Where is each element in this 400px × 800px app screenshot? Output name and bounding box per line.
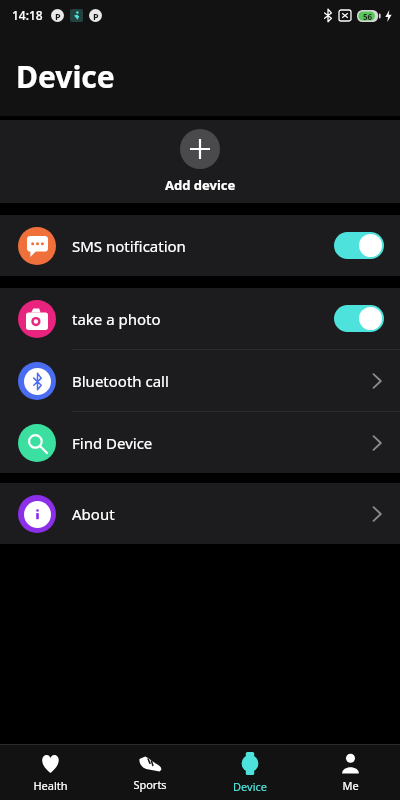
button[interactable]: About	[0, 483, 400, 544]
button[interactable]: Bluetooth call	[0, 350, 400, 411]
button[interactable]: Sports	[100, 745, 200, 800]
button[interactable]: Toggle on	[334, 232, 384, 259]
staticText: Device	[16, 56, 115, 97]
button[interactable]: take a photo	[0, 288, 400, 349]
staticText: Bluetooth call	[72, 371, 372, 391]
staticText: take a photo	[72, 309, 334, 329]
staticText: SMS notification	[72, 236, 334, 256]
staticText: 56	[363, 11, 373, 22]
staticText: Sports	[133, 777, 167, 792]
button[interactable]: Toggle on	[334, 305, 384, 332]
button[interactable]: Me	[300, 745, 400, 800]
staticText: Add device	[165, 176, 236, 194]
button[interactable]: Device	[200, 745, 300, 800]
staticText: About	[72, 504, 372, 524]
staticText: Me	[342, 778, 359, 793]
staticText: Find Device	[72, 433, 372, 453]
button[interactable]: Add device	[0, 120, 400, 203]
staticText: 14:18	[12, 7, 43, 23]
button[interactable]: SMS notification	[0, 215, 400, 276]
staticText: P	[55, 10, 61, 22]
staticText: Device	[233, 779, 267, 794]
button[interactable]: Health	[0, 745, 100, 800]
staticText: Health	[33, 778, 68, 793]
button[interactable]: Find Device	[0, 412, 400, 473]
staticText: P	[93, 10, 99, 22]
